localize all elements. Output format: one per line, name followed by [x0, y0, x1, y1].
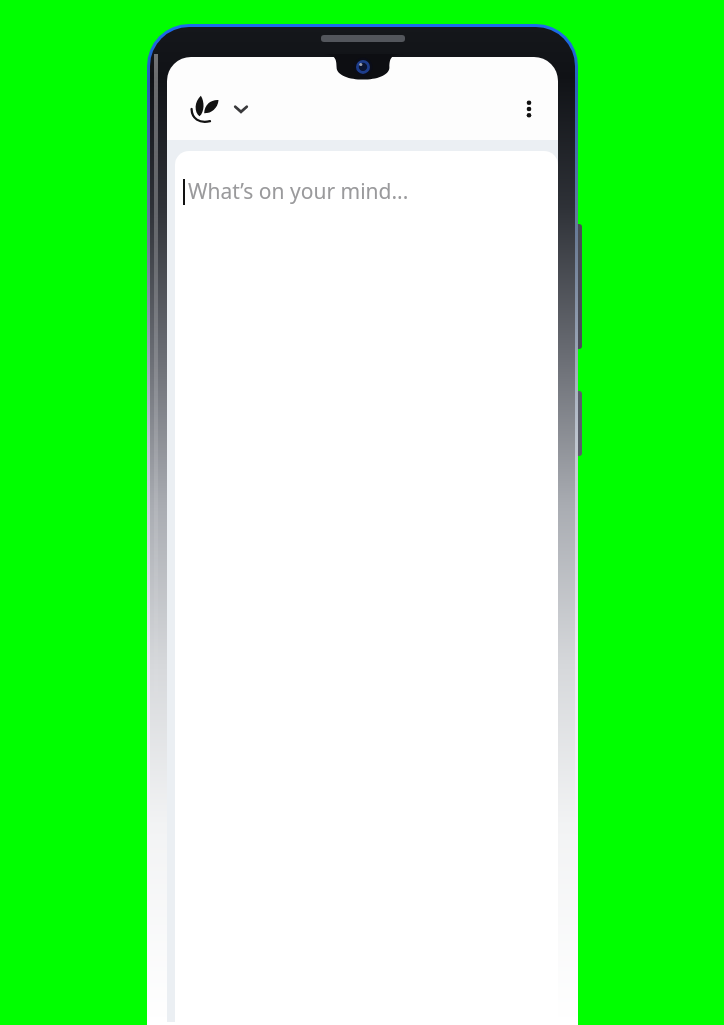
staticText: What’s on your mind... — [188, 177, 409, 206]
button[interactable]: What’s on your mind... — [175, 151, 558, 1022]
button[interactable]: Switch journal — [185, 90, 253, 128]
button[interactable]: More options — [506, 86, 552, 132]
